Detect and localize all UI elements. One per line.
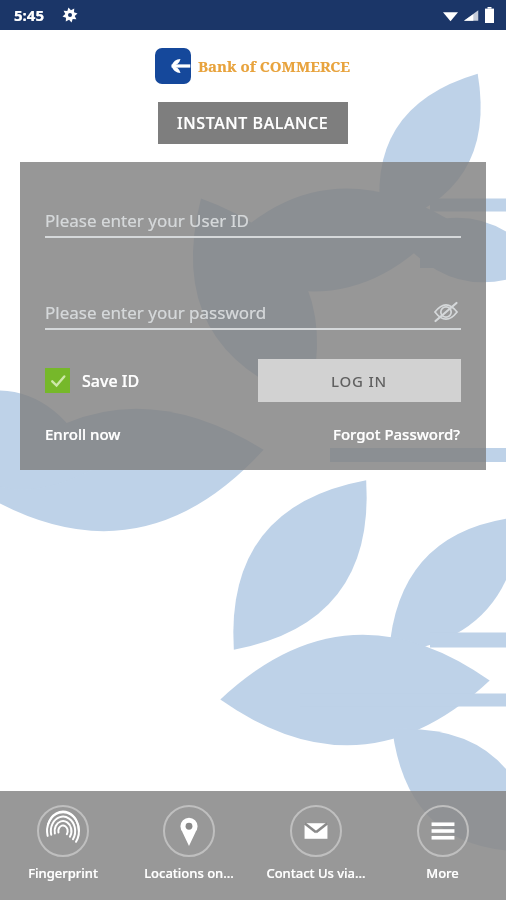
button[interactable]: More	[379, 791, 506, 900]
button[interactable]: Enroll now	[45, 424, 121, 444]
button[interactable]: Please enter your User ID	[45, 204, 461, 236]
button[interactable]: Forgot Password?	[333, 424, 461, 444]
button[interactable]: Contact Us via...	[252, 791, 379, 900]
button[interactable]: LOG IN	[258, 359, 461, 402]
staticText: INSTANT BALANCE	[177, 112, 329, 134]
staticText: Save ID	[82, 370, 140, 392]
button[interactable]: Please enter your password	[45, 296, 461, 328]
staticText: Forgot Password?	[333, 424, 461, 444]
button[interactable]: Save ID	[45, 368, 140, 393]
staticText: Please enter your User ID	[45, 209, 249, 232]
button[interactable]: Locations on...	[126, 791, 252, 900]
staticText: LOG IN	[331, 371, 388, 391]
staticText: Locations on...	[144, 864, 234, 882]
staticText: Fingerprint	[28, 864, 98, 882]
staticText: Enroll now	[45, 424, 121, 444]
staticText: 5:45	[14, 5, 44, 25]
staticText: More	[426, 864, 459, 882]
button[interactable]: INSTANT BALANCE	[158, 102, 348, 144]
staticText: Bank of COMMERCE	[198, 56, 351, 76]
button[interactable]: Fingerprint	[0, 791, 126, 900]
button[interactable]: Show password	[431, 297, 461, 327]
staticText: Contact Us via...	[266, 864, 366, 882]
staticText: Please enter your password	[45, 301, 267, 324]
